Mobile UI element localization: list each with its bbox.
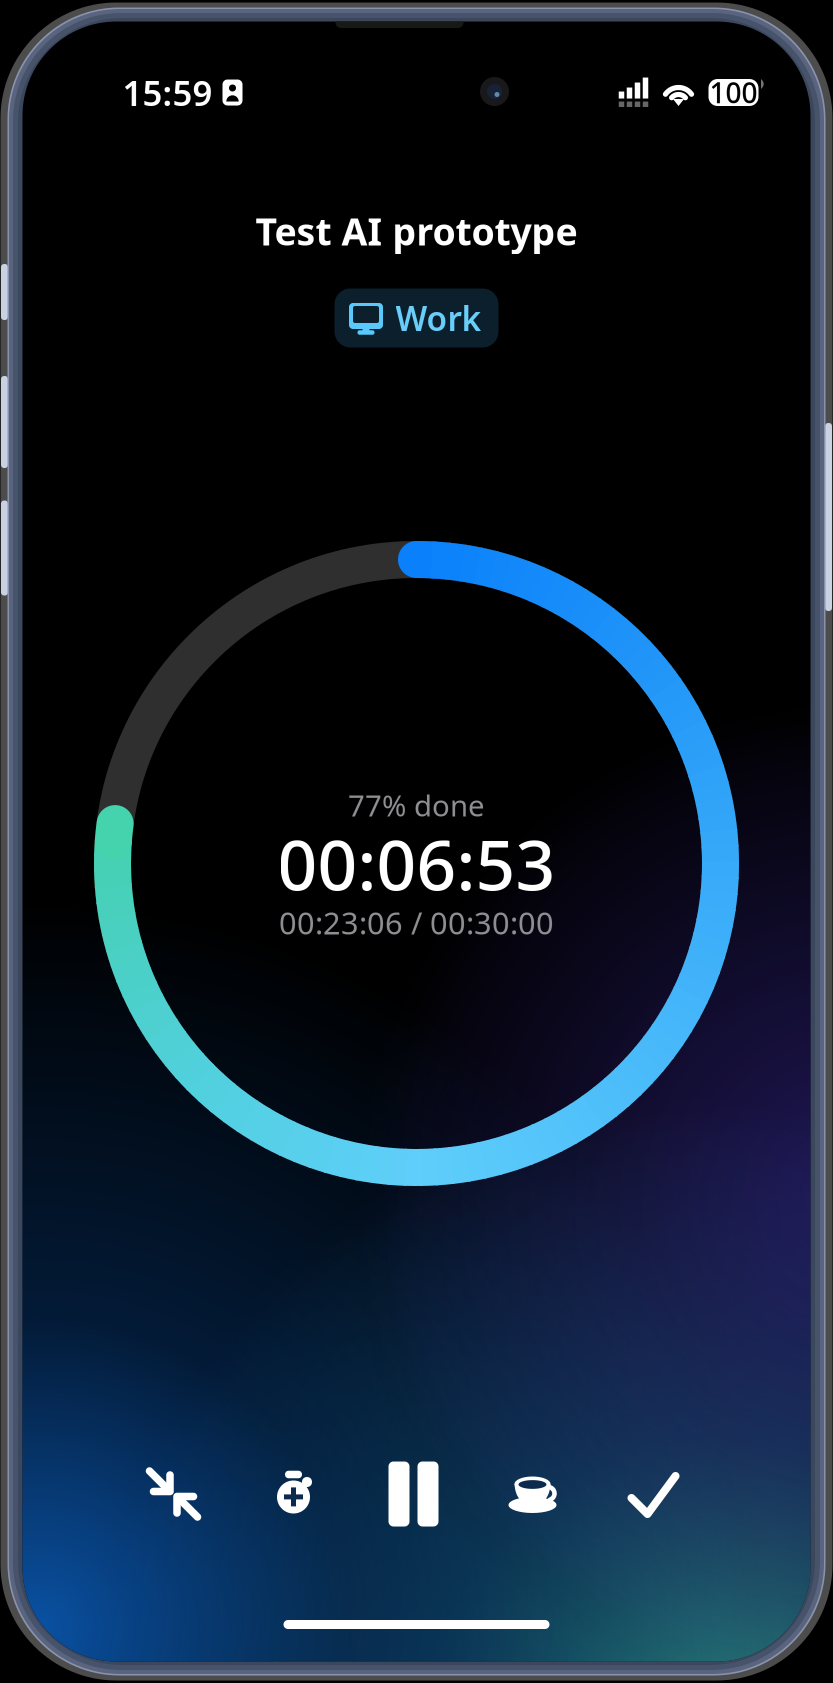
staticText: 77% done xyxy=(348,785,485,824)
staticText: 100 xyxy=(709,74,757,111)
button[interactable]: Work xyxy=(334,288,498,347)
button[interactable]: Pause xyxy=(353,1446,473,1542)
button[interactable]: Finish xyxy=(593,1446,713,1542)
button[interactable]: Collapse xyxy=(113,1446,233,1542)
staticText: Work xyxy=(395,296,481,340)
button[interactable]: Take a break xyxy=(473,1446,593,1542)
button[interactable]: Add time xyxy=(233,1446,353,1542)
staticText: Test AI prototype xyxy=(255,206,577,256)
staticText: 15:59 xyxy=(122,69,212,115)
staticText: 00:23:06 / 00:30:00 xyxy=(279,902,554,943)
staticText: 00:06:53 xyxy=(277,817,555,910)
